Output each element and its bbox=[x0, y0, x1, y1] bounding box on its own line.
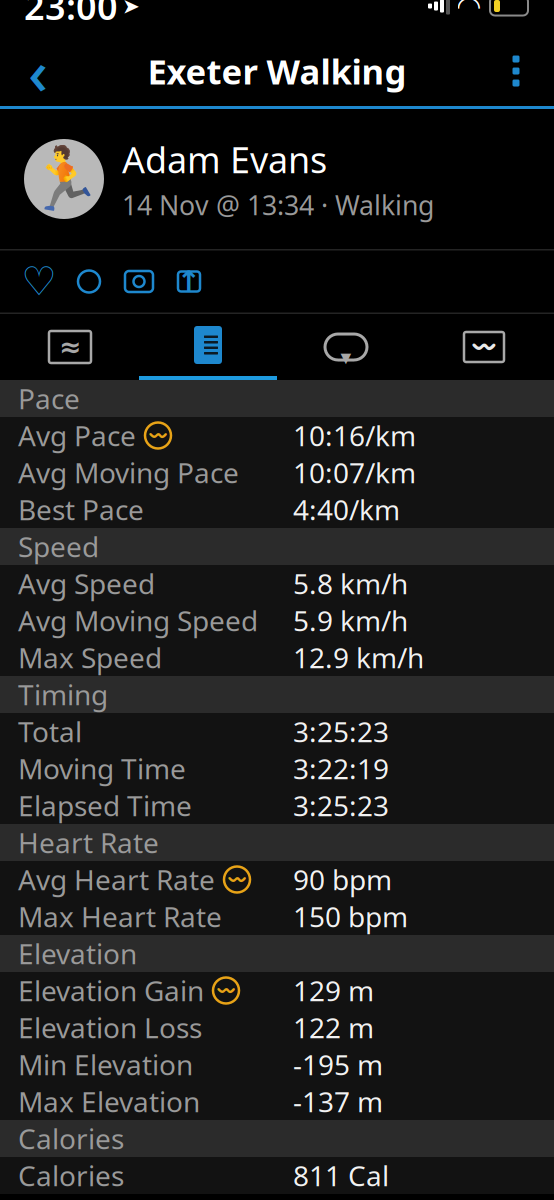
staticText: 3:22:19 bbox=[293, 750, 389, 787]
staticText: Moving Time bbox=[18, 750, 186, 787]
staticText: Max Speed bbox=[18, 639, 162, 676]
button[interactable]: Comment bbox=[64, 254, 114, 308]
staticText: Avg Moving Speed bbox=[18, 602, 258, 639]
staticText: ‹ bbox=[28, 30, 48, 112]
button[interactable]: Add photo bbox=[114, 254, 164, 308]
staticText: 〰 bbox=[469, 334, 498, 360]
button[interactable]: Max Heart Rate bbox=[0, 898, 554, 935]
staticText: Timing bbox=[18, 676, 108, 713]
staticText: Min Elevation bbox=[18, 1046, 193, 1083]
staticText: Calories bbox=[18, 1120, 124, 1157]
button[interactable]: Avg Moving Speed bbox=[0, 602, 554, 639]
staticText: Avg Moving Pace bbox=[18, 454, 239, 491]
staticText: ↑ bbox=[176, 265, 201, 298]
button[interactable]: Avg Pace bbox=[0, 417, 554, 454]
button[interactable]: Details bbox=[139, 314, 277, 380]
staticText: ▾ bbox=[340, 345, 351, 369]
staticText: 4:40/km bbox=[293, 491, 400, 528]
button[interactable]: Like bbox=[14, 254, 64, 308]
button[interactable]: Calories bbox=[0, 1157, 554, 1194]
staticText: 🏃 bbox=[26, 144, 102, 214]
staticText: 5.9 km/h bbox=[293, 602, 408, 639]
staticText: 14 Nov @ 13:34 · Walking bbox=[122, 187, 434, 223]
button[interactable]: More options bbox=[488, 43, 544, 99]
staticText: Speed bbox=[18, 528, 99, 565]
button[interactable]: Max Speed bbox=[0, 639, 554, 676]
staticText: Avg Heart Rate bbox=[18, 861, 215, 898]
staticText: 〰 bbox=[215, 981, 237, 1000]
staticText: 3:25:23 bbox=[293, 787, 389, 824]
staticText: Avg Speed bbox=[18, 565, 155, 602]
button[interactable]: Avg Heart Rate bbox=[0, 861, 554, 898]
button[interactable]: Elevation Loss bbox=[0, 1009, 554, 1046]
staticText: 10:07/km bbox=[293, 454, 416, 491]
staticText: 129 m bbox=[293, 972, 374, 1009]
staticText: 5.8 km/h bbox=[293, 565, 408, 602]
staticText: Elevation Loss bbox=[18, 1009, 202, 1046]
button[interactable]: Elapsed Time bbox=[0, 787, 554, 824]
staticText: 10:16/km bbox=[293, 417, 416, 454]
staticText: ➤ bbox=[122, 0, 140, 18]
staticText: 90 bpm bbox=[293, 861, 392, 898]
button[interactable]: Map bbox=[1, 316, 139, 378]
button[interactable]: Best Pace bbox=[0, 491, 554, 528]
staticText: 122 m bbox=[293, 1009, 374, 1046]
staticText: Calories bbox=[18, 1157, 124, 1194]
staticText: Max Elevation bbox=[18, 1083, 200, 1120]
staticText: Elapsed Time bbox=[18, 787, 192, 824]
button[interactable]: Charts bbox=[415, 316, 553, 378]
staticText: Elevation Gain bbox=[18, 972, 204, 1009]
button[interactable]: Laps bbox=[277, 316, 415, 378]
staticText: 〰 bbox=[147, 426, 169, 445]
staticText: 12.9 km/h bbox=[293, 639, 424, 676]
staticText: Exeter Walking bbox=[147, 48, 406, 94]
button[interactable]: Avg Moving Pace bbox=[0, 454, 554, 491]
staticText: 3:25:23 bbox=[293, 713, 389, 750]
staticText: Avg Pace bbox=[18, 417, 136, 454]
staticText: 150 bpm bbox=[293, 898, 408, 935]
staticText: Max Heart Rate bbox=[18, 898, 222, 935]
button[interactable]: Back bbox=[10, 43, 66, 99]
staticText: ≈ bbox=[59, 332, 81, 362]
staticText: Pace bbox=[18, 380, 80, 417]
button[interactable]: Elevation Gain bbox=[0, 972, 554, 1009]
button[interactable]: Min Elevation bbox=[0, 1046, 554, 1083]
button[interactable]: Avg Speed bbox=[0, 565, 554, 602]
staticText: Elevation bbox=[18, 935, 137, 972]
button[interactable]: Total bbox=[0, 713, 554, 750]
staticText: -137 m bbox=[293, 1083, 383, 1120]
staticText: 23:00 bbox=[24, 0, 118, 30]
staticText: ♡ bbox=[21, 259, 57, 304]
button[interactable]: Max Elevation bbox=[0, 1083, 554, 1120]
staticText: 811 Cal bbox=[293, 1157, 389, 1194]
staticText: Total bbox=[18, 713, 82, 750]
staticText: Heart Rate bbox=[18, 824, 159, 861]
staticText: ◠ bbox=[457, 0, 480, 23]
staticText: Adam Evans bbox=[122, 135, 327, 183]
staticText: 〰 bbox=[226, 870, 248, 889]
button[interactable]: Share bbox=[164, 254, 214, 308]
staticText: -195 m bbox=[293, 1046, 383, 1083]
staticText: Best Pace bbox=[18, 491, 144, 528]
button[interactable]: Moving Time bbox=[0, 750, 554, 787]
